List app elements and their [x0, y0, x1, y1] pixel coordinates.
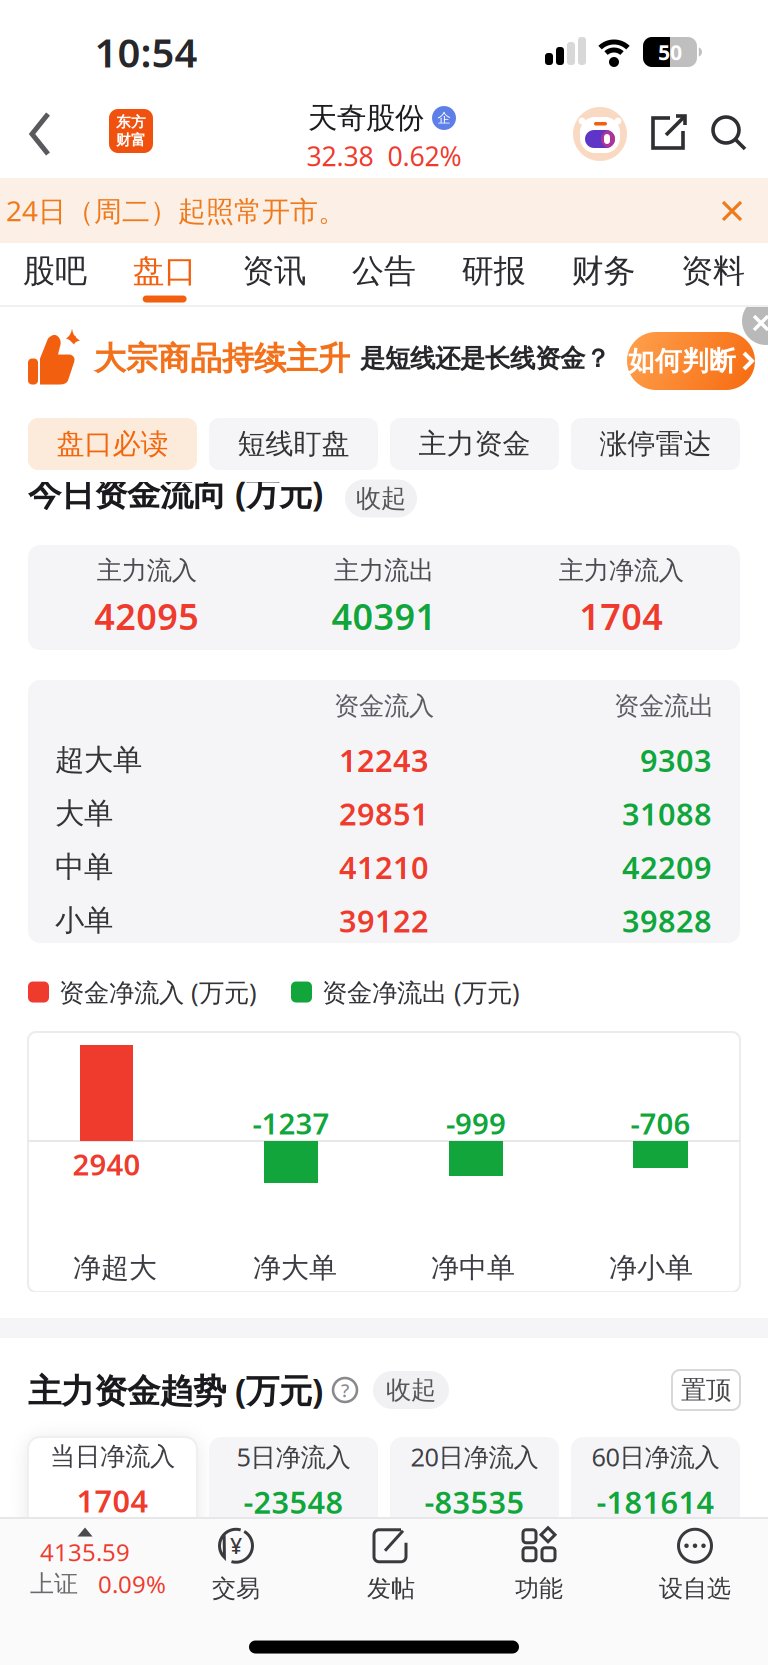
staticText: 月24日（周二）起照常开市。: [0, 192, 346, 229]
staticText: 超大单: [55, 742, 142, 778]
staticText: 主力流入: [97, 555, 197, 586]
staticText: 涨停雷达: [599, 427, 711, 461]
button[interactable]: 研报: [439, 243, 548, 305]
button[interactable]: 股吧: [0, 243, 110, 305]
staticText: 41210: [339, 847, 429, 887]
button[interactable]: 盘口: [110, 243, 219, 305]
staticText: 42095: [94, 592, 199, 640]
staticText: 上证: [30, 1569, 78, 1599]
staticText: 大单: [55, 795, 113, 831]
staticText: 大宗商品持续主升: [94, 339, 350, 378]
staticText: 今日资金流向 (万元): [28, 471, 323, 515]
staticText: 研报: [462, 251, 526, 291]
staticText: 功能: [515, 1574, 563, 1603]
staticText: 资料: [681, 251, 745, 291]
button[interactable]: 收起: [373, 1371, 449, 1409]
staticText: ¥: [230, 1532, 242, 1560]
staticText: 0.09%: [98, 1568, 166, 1600]
staticText: 40391: [331, 592, 436, 640]
staticText: 12243: [339, 740, 429, 780]
button[interactable]: 20日净流入: [390, 1437, 559, 1537]
staticText: 32.38 0.62%: [306, 138, 461, 174]
staticText: 主力资金趋势 (万元): [28, 1368, 323, 1412]
staticText: 29851: [339, 793, 429, 834]
staticText: 如何判断: [628, 345, 736, 377]
button[interactable]: 如何判断: [627, 332, 755, 390]
button[interactable]: 资料: [658, 243, 768, 305]
button[interactable]: Close banner: [742, 297, 768, 345]
staticText: 资金流入: [334, 690, 434, 721]
staticText: 资讯: [242, 251, 306, 291]
staticText: 财富: [116, 131, 146, 149]
staticText: -1237: [252, 1103, 329, 1142]
staticText: 主力净流入: [559, 555, 684, 586]
staticText: ?: [341, 1378, 349, 1402]
staticText: 置顶: [681, 1374, 731, 1405]
staticText: 设自选: [659, 1574, 731, 1603]
staticText: 资金净流入 (万元): [59, 975, 257, 1009]
staticText: -83535: [424, 1481, 524, 1522]
staticText: 净超大: [73, 1251, 157, 1285]
button[interactable]: Assistant: [573, 107, 627, 161]
staticText: 财务: [571, 251, 635, 291]
staticText: 股吧: [23, 251, 87, 291]
button[interactable]: 当日净流入: [28, 1437, 197, 1537]
staticText: -23548: [243, 1481, 343, 1522]
staticText: 收起: [386, 1374, 436, 1405]
button[interactable]: 60日净流入: [571, 1437, 740, 1537]
staticText: 小单: [55, 902, 113, 938]
staticText: 1704: [76, 1480, 148, 1521]
staticText: 短线盯盘: [237, 427, 349, 461]
staticText: 资金流出: [614, 690, 714, 721]
button[interactable]: 发帖: [326, 1520, 456, 1610]
button[interactable]: 置顶: [672, 1370, 740, 1410]
staticText: 39122: [339, 900, 429, 941]
button[interactable]: 收起: [345, 479, 417, 517]
staticText: 5日净流入: [236, 1440, 350, 1473]
staticText: 净大单: [253, 1251, 337, 1285]
button[interactable]: ¥: [171, 1520, 301, 1610]
button[interactable]: 5日净流入: [209, 1437, 378, 1537]
staticText: 天奇股份: [308, 100, 424, 136]
staticText: 净中单: [431, 1251, 515, 1285]
staticText: 企: [437, 110, 450, 126]
staticText: 公告: [352, 251, 416, 291]
button[interactable]: 短线盯盘: [209, 418, 378, 470]
button[interactable]: 资讯: [219, 243, 329, 305]
button[interactable]: 公告: [329, 243, 439, 305]
button[interactable]: Share: [649, 114, 687, 152]
staticText: -706: [630, 1103, 690, 1142]
staticText: 交易: [212, 1574, 260, 1603]
staticText: -181614: [596, 1481, 714, 1522]
staticText: 31088: [622, 793, 712, 834]
staticText: 净小单: [609, 1251, 693, 1285]
button[interactable]: 涨停雷达: [571, 418, 740, 470]
staticText: 42209: [622, 847, 712, 887]
button[interactable]: 4135.59: [5, 1520, 185, 1610]
button[interactable]: 主力资金: [390, 418, 559, 470]
staticText: 10:54: [94, 25, 197, 78]
button[interactable]: 盘口必读: [28, 418, 197, 470]
button[interactable]: Search: [710, 114, 748, 152]
button[interactable]: Back: [29, 112, 51, 156]
staticText: 60日净流入: [591, 1440, 719, 1473]
staticText: 盘口必读: [56, 427, 168, 461]
staticText: 50: [658, 38, 682, 66]
staticText: 9303: [640, 740, 712, 780]
staticText: 收起: [356, 483, 406, 514]
staticText: 20日净流入: [410, 1440, 538, 1473]
staticText: 资金净流出 (万元): [322, 975, 520, 1009]
button[interactable]: 设自选: [630, 1520, 760, 1610]
staticText: 39828: [622, 900, 712, 941]
button[interactable]: Close notice: [719, 198, 745, 224]
staticText: -999: [446, 1103, 506, 1142]
staticText: 当日净流入: [50, 1441, 175, 1472]
staticText: 主力资金: [418, 427, 530, 461]
button[interactable]: 财务: [548, 243, 658, 305]
button[interactable]: 功能: [474, 1520, 604, 1610]
staticText: 发帖: [367, 1574, 415, 1603]
staticText: 主力流出: [334, 555, 434, 586]
staticText: 中单: [55, 849, 113, 885]
staticText: 2940: [72, 1144, 140, 1183]
staticText: 4135.59: [40, 1536, 130, 1568]
